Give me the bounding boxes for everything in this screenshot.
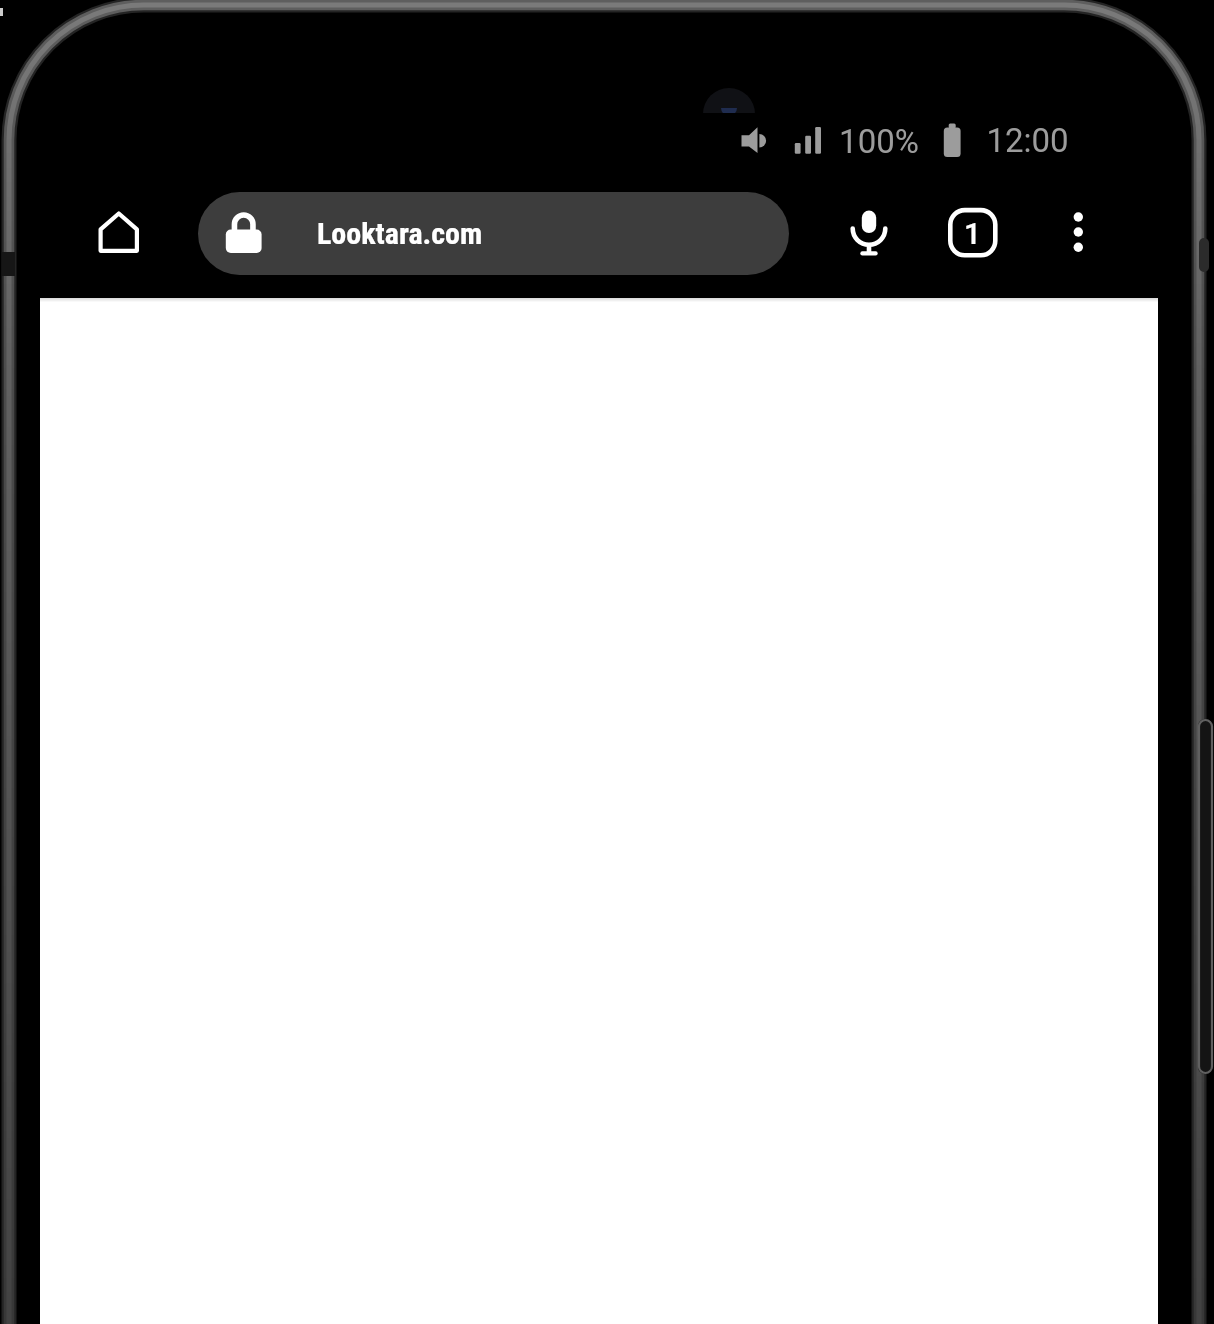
staticText: 100%: [839, 122, 919, 161]
staticText: 1: [964, 216, 982, 251]
button[interactable]: [837, 200, 901, 264]
staticText: Looktara.com: [317, 216, 483, 251]
button[interactable]: [1048, 200, 1108, 264]
button[interactable]: Looktara.com: [198, 192, 789, 275]
button[interactable]: [88, 200, 152, 264]
button[interactable]: 1: [944, 204, 1002, 262]
staticText: 12:00: [986, 121, 1069, 160]
